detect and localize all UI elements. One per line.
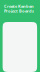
staticText: Project Boards (4, 9, 34, 13)
staticText: Create Kanban (4, 4, 34, 8)
